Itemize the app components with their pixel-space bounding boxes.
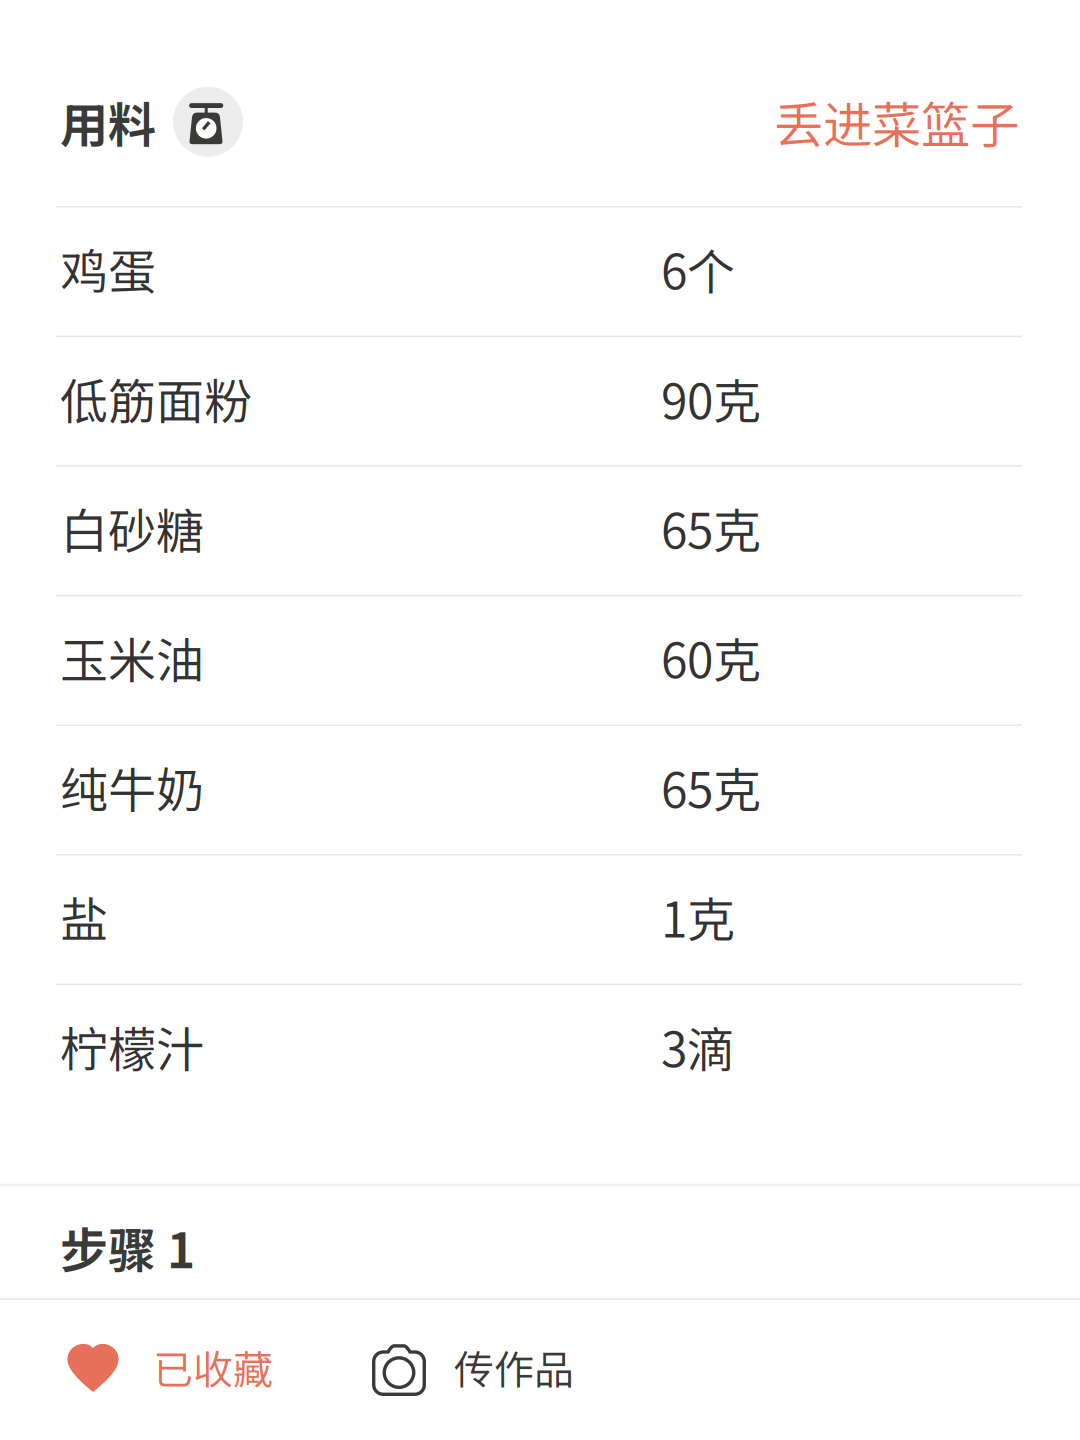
staticText: 盐 xyxy=(60,882,108,951)
button[interactable]: 低筋面粉 xyxy=(0,337,1080,465)
button[interactable]: 鸡蛋 xyxy=(0,208,1080,336)
staticText: 已收藏 xyxy=(153,1338,273,1396)
staticText: 6个 xyxy=(661,234,735,303)
button[interactable]: 玉米油 xyxy=(0,596,1080,724)
staticText: 纯牛奶 xyxy=(60,752,204,822)
staticText: 1克 xyxy=(661,882,735,951)
button[interactable]: 换算单位 xyxy=(173,87,243,157)
staticText: 65克 xyxy=(661,493,761,562)
button[interactable]: 丢进菜篮子 xyxy=(774,76,1019,167)
button[interactable]: 柠檬汁 xyxy=(0,985,1080,1113)
staticText: 白砂糖 xyxy=(60,493,204,562)
button[interactable]: 盐 xyxy=(0,856,1080,984)
staticText: 传作品 xyxy=(454,1338,574,1396)
button[interactable]: 纯牛奶 xyxy=(0,726,1080,854)
staticText: 90克 xyxy=(661,363,761,433)
staticText: 用料 xyxy=(60,87,156,156)
staticText: 鸡蛋 xyxy=(60,234,156,303)
staticText: 丢进菜篮子 xyxy=(774,86,1019,157)
button[interactable]: 传作品 xyxy=(287,1300,588,1440)
staticText: 步骤 1 xyxy=(60,1212,195,1282)
staticText: 柠檬汁 xyxy=(60,1011,204,1081)
staticText: 65克 xyxy=(661,752,761,822)
staticText: 60克 xyxy=(661,623,761,692)
staticText: 低筋面粉 xyxy=(60,363,252,433)
staticText: 3滴 xyxy=(661,1011,735,1081)
button[interactable]: 已收藏 xyxy=(0,1300,287,1440)
staticText: 玉米油 xyxy=(60,623,204,692)
button[interactable]: 白砂糖 xyxy=(0,467,1080,595)
